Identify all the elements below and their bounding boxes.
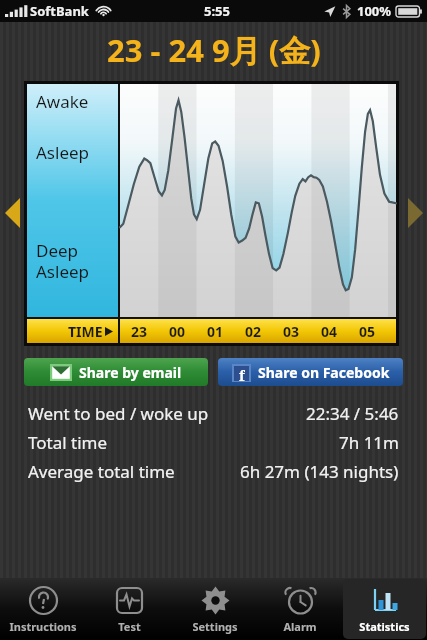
- staticText: 5:55: [204, 2, 230, 20]
- staticText: SoftBank: [30, 2, 89, 20]
- staticText: 22:34 / 5:46: [306, 402, 399, 425]
- button[interactable]: Statistics: [343, 579, 426, 639]
- staticText: 100%: [357, 2, 392, 20]
- staticText: 05: [359, 322, 376, 341]
- staticText: Alarm: [283, 619, 317, 634]
- staticText: Average total time: [28, 460, 175, 483]
- button[interactable]: Settings: [173, 579, 256, 639]
- staticText: f: [239, 366, 245, 381]
- button[interactable]: Share by email: [24, 358, 208, 386]
- staticText: Share on Facebook: [258, 363, 390, 382]
- staticText: 6h 27m (143 nights): [240, 460, 399, 483]
- staticText: 04: [321, 322, 338, 341]
- staticText: Total time: [28, 431, 108, 454]
- button[interactable]: Previous night: [0, 178, 24, 248]
- button[interactable]: Next night: [403, 178, 427, 248]
- staticText: 7h 11m: [339, 431, 399, 454]
- staticText: Went to bed / woke up: [28, 402, 209, 425]
- staticText: TIME: [68, 322, 103, 341]
- staticText: 02: [245, 322, 262, 341]
- staticText: Share by email: [79, 363, 182, 382]
- staticText: Statistics: [359, 619, 410, 634]
- button[interactable]: Test: [87, 579, 171, 639]
- staticText: Deep Asleep: [36, 239, 90, 283]
- staticText: 01: [207, 322, 224, 341]
- button[interactable]: Instructions: [1, 579, 85, 639]
- staticText: 23: [131, 322, 148, 341]
- staticText: Asleep: [36, 141, 90, 164]
- button[interactable]: Alarm: [258, 579, 341, 639]
- staticText: Test: [118, 619, 141, 634]
- staticText: Awake: [36, 90, 89, 113]
- staticText: Instructions: [9, 619, 77, 634]
- button[interactable]: f: [218, 358, 403, 386]
- staticText: 03: [283, 322, 300, 341]
- staticText: Settings: [192, 619, 238, 634]
- staticText: 23 - 24 9月 (金): [107, 29, 321, 71]
- staticText: 00: [169, 322, 186, 341]
